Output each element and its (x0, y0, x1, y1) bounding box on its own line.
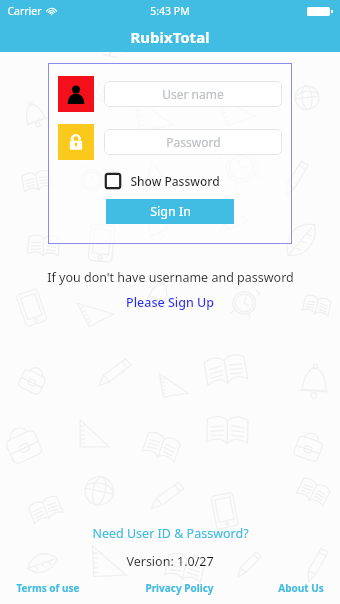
button[interactable]: User name (104, 81, 282, 107)
staticText: Need User ID & Password? (92, 525, 249, 542)
other: User name icon (58, 76, 94, 112)
button[interactable]: Privacy Policy (143, 579, 216, 597)
staticText: Terms of use (16, 581, 80, 595)
staticText: 5:43 PM (150, 4, 190, 18)
button[interactable]: Terms of use (14, 579, 82, 597)
staticText: If you don't have username and password (47, 269, 294, 286)
button[interactable]: Show Password (105, 173, 220, 189)
staticText: RubixTotal (130, 27, 210, 47)
button[interactable]: Need User ID & Password? (88, 523, 253, 544)
staticText: About Us (278, 581, 324, 595)
other: Password icon (58, 124, 94, 160)
button[interactable]: Password (104, 129, 282, 155)
staticText: Privacy Policy (145, 581, 214, 595)
button[interactable]: Please Sign Up (122, 293, 218, 312)
staticText: Version: 1.0/27 (126, 553, 214, 570)
staticText: Sign In (150, 203, 191, 220)
staticText: User name (162, 86, 224, 102)
button[interactable]: About Us (276, 579, 326, 597)
staticText: Password (166, 134, 221, 150)
staticText: Please Sign Up (126, 294, 214, 311)
staticText: Carrier (7, 4, 42, 18)
button[interactable]: Sign In (106, 199, 234, 224)
staticText: Show Password (130, 173, 220, 189)
